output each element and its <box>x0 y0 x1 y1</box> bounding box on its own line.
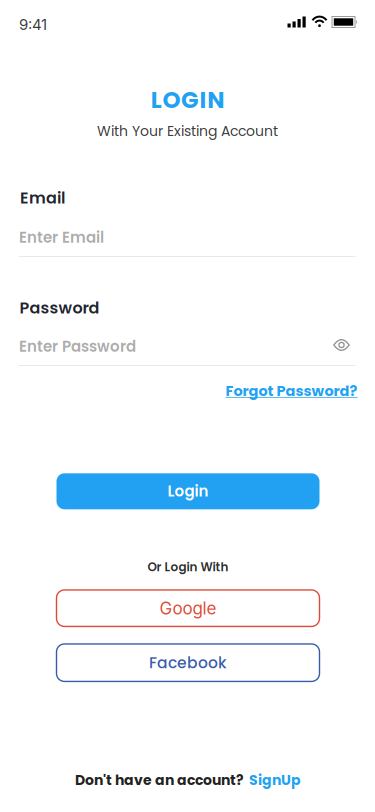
staticText: Facebook <box>149 652 227 673</box>
staticText: 9:41 <box>19 15 47 33</box>
staticText: With Your Existing Account <box>97 121 278 141</box>
staticText: Enter Email <box>19 227 104 248</box>
staticText: Password <box>19 297 99 319</box>
button[interactable]: Login <box>56 473 319 509</box>
button[interactable]: Enter Password <box>19 337 355 365</box>
button[interactable]: Facebook <box>56 644 319 681</box>
staticText: Login <box>167 481 208 502</box>
button[interactable]: Forgot Password? <box>225 381 357 401</box>
staticText: LOGIN <box>151 84 224 116</box>
staticText: Or Login With <box>147 559 228 575</box>
staticText: Forgot Password? <box>225 381 357 401</box>
staticText: Google <box>159 598 216 618</box>
staticText: Email <box>20 187 65 209</box>
staticText: Don't have an account? <box>75 770 244 790</box>
button[interactable]: Enter Email <box>19 227 355 256</box>
button[interactable]: SignUp <box>249 770 301 790</box>
staticText: SignUp <box>249 770 301 790</box>
staticText: Enter Password <box>19 336 136 357</box>
button[interactable]: Google <box>56 590 319 626</box>
button[interactable]: Show password <box>333 339 350 351</box>
